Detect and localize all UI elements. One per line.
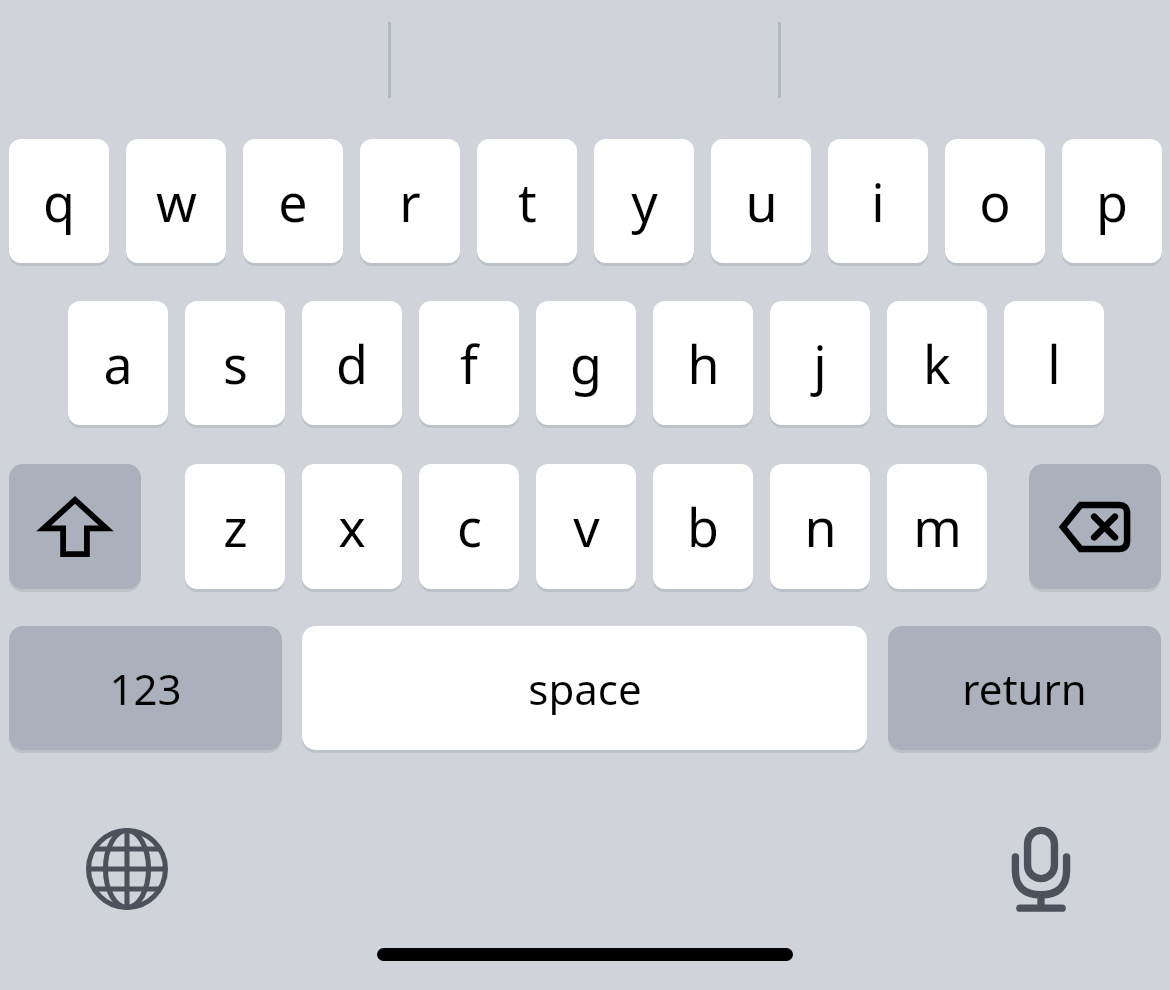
staticText: z (223, 491, 248, 562)
button[interactable]: Dictate (992, 820, 1090, 918)
button[interactable]: m (887, 464, 987, 589)
button[interactable]: u (711, 139, 811, 263)
staticText: f (460, 328, 478, 399)
button[interactable]: space (302, 626, 867, 750)
button[interactable]: t (477, 139, 577, 263)
staticText: j (813, 328, 827, 399)
button[interactable]: i (828, 139, 928, 263)
staticText: u (745, 166, 778, 237)
staticText: i (871, 166, 885, 237)
button[interactable]: c (419, 464, 519, 589)
staticText: p (1096, 166, 1128, 237)
staticText: 123 (109, 660, 182, 717)
button[interactable]: k (887, 301, 987, 425)
staticText: t (518, 166, 537, 237)
button[interactable]: Shift (9, 464, 141, 589)
button[interactable]: return (888, 626, 1161, 750)
staticText: l (1047, 328, 1061, 399)
staticText: g (570, 328, 602, 399)
button[interactable]: s (185, 301, 285, 425)
button[interactable]: v (536, 464, 636, 589)
button[interactable]: y (594, 139, 694, 263)
button[interactable]: g (536, 301, 636, 425)
staticText: a (103, 328, 133, 399)
button[interactable]: a (68, 301, 168, 425)
staticText: v (573, 491, 600, 562)
button[interactable]: Backspace (1029, 464, 1161, 589)
button[interactable]: h (653, 301, 753, 425)
button[interactable]: w (126, 139, 226, 263)
button[interactable]: x (302, 464, 402, 589)
staticText: m (913, 491, 962, 562)
staticText: b (687, 491, 719, 562)
button[interactable]: f (419, 301, 519, 425)
staticText: q (43, 166, 75, 237)
staticText: space (528, 660, 642, 717)
button[interactable]: j (770, 301, 870, 425)
button[interactable]: o (945, 139, 1045, 263)
button[interactable]: z (185, 464, 285, 589)
button[interactable]: b (653, 464, 753, 589)
staticText: h (687, 328, 720, 399)
staticText: c (457, 491, 482, 562)
staticText: w (156, 166, 197, 237)
staticText: x (338, 491, 366, 562)
button[interactable]: q (9, 139, 109, 263)
staticText: s (223, 328, 248, 399)
button[interactable]: 123 (9, 626, 282, 750)
button[interactable]: n (770, 464, 870, 589)
button[interactable]: r (360, 139, 460, 263)
button[interactable]: d (302, 301, 402, 425)
staticText: r (399, 166, 421, 237)
staticText: e (278, 166, 308, 237)
staticText: n (804, 491, 837, 562)
staticText: y (631, 166, 658, 237)
staticText: d (336, 328, 368, 399)
button[interactable]: l (1004, 301, 1104, 425)
staticText: o (979, 166, 1011, 237)
button[interactable]: Change keyboard language (78, 820, 176, 918)
button[interactable]: e (243, 139, 343, 263)
staticText: k (923, 328, 951, 399)
staticText: return (962, 660, 1087, 717)
button[interactable]: p (1062, 139, 1162, 263)
